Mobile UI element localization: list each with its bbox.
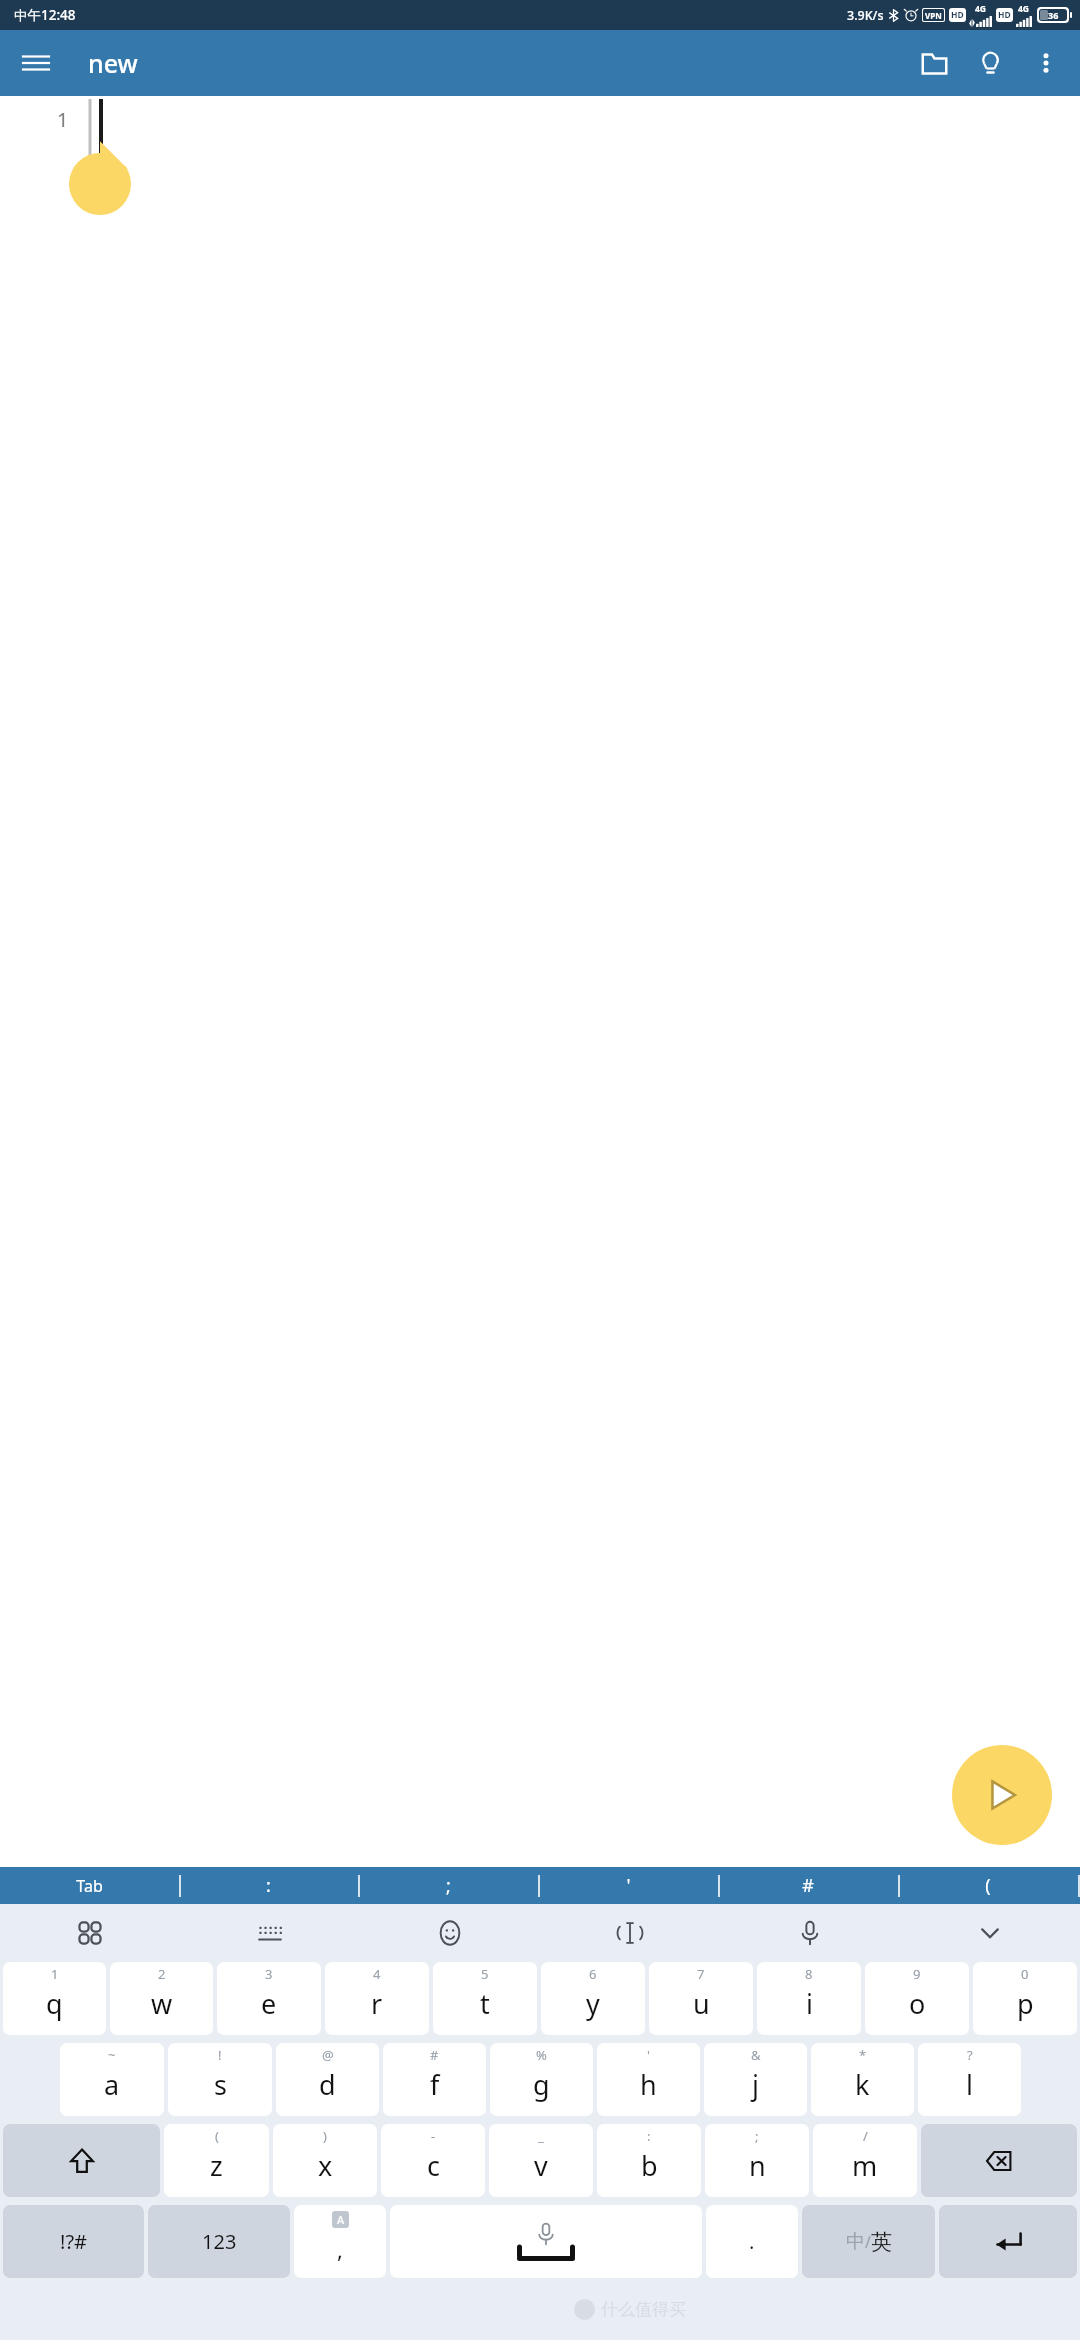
button[interactable]: Symbols	[0, 1904, 180, 1962]
staticText: /	[863, 2127, 868, 2145]
staticText: 1	[57, 106, 69, 133]
button[interactable]: Run	[952, 1745, 1052, 1845]
button[interactable]: &	[704, 2043, 807, 2116]
button[interactable]: *	[811, 2043, 914, 2116]
staticText: #	[430, 2046, 439, 2064]
staticText: ;	[755, 2127, 759, 2145]
button[interactable]: ;	[705, 2124, 809, 2197]
button[interactable]: /	[813, 2124, 917, 2197]
staticText: (	[985, 1873, 991, 1898]
staticText: 9	[913, 1965, 921, 1983]
staticText: q	[46, 1985, 63, 2022]
button[interactable]: 8	[757, 1962, 861, 2035]
button[interactable]: _	[489, 2124, 593, 2197]
button[interactable]: ~	[60, 2043, 164, 2116]
staticText: 英	[871, 2229, 892, 2255]
button[interactable]: Shift	[3, 2124, 160, 2197]
staticText: HD	[951, 9, 964, 21]
staticText: 6	[589, 1965, 597, 1983]
button[interactable]: !	[168, 2043, 272, 2116]
staticText: w	[151, 1985, 173, 2022]
button[interactable]: Enter	[939, 2205, 1077, 2278]
button[interactable]: ?	[918, 2043, 1021, 2116]
button[interactable]: ;	[358, 1867, 538, 1904]
staticText: 123	[202, 2228, 237, 2255]
staticText: _	[538, 2127, 544, 2145]
staticText: Tab	[76, 1875, 103, 1897]
button[interactable]: Open navigation menu	[12, 39, 60, 87]
button[interactable]: More options	[1018, 35, 1074, 91]
staticText: &	[751, 2046, 761, 2064]
button[interactable]: (	[164, 2124, 269, 2197]
staticText: i	[806, 1985, 813, 2022]
staticText: t	[480, 1985, 490, 2022]
button[interactable]: 6	[541, 1962, 645, 2035]
staticText: y	[586, 1985, 600, 2022]
button[interactable]: 7	[649, 1962, 753, 2035]
button[interactable]: Voice input	[720, 1904, 900, 1962]
staticText: l	[966, 2066, 973, 2103]
button[interactable]: 2	[110, 1962, 213, 2035]
staticText: ?	[967, 2046, 973, 2064]
staticText: 中	[846, 2230, 865, 2254]
button[interactable]: .	[706, 2205, 798, 2278]
button[interactable]: Hide keyboard	[900, 1904, 1080, 1962]
staticText: n	[749, 2147, 766, 2184]
button[interactable]: 1	[3, 1962, 106, 2035]
staticText: ,	[337, 2234, 343, 2264]
staticText: j	[752, 2066, 759, 2103]
button[interactable]: Open folder	[906, 35, 962, 91]
staticText: @	[322, 2046, 334, 2064]
staticText: 1	[51, 1965, 59, 1983]
staticText: h	[640, 2066, 657, 2103]
button[interactable]: Space	[390, 2205, 702, 2278]
button[interactable]: Hint	[962, 35, 1018, 91]
staticText: 3	[265, 1965, 273, 1983]
button[interactable]: Backspace	[921, 2124, 1077, 2197]
staticText: 中午12:48	[14, 6, 76, 24]
button[interactable]: '	[597, 2043, 700, 2116]
staticText: f	[430, 2066, 440, 2103]
button[interactable]: 5	[433, 1962, 537, 2035]
button[interactable]: :	[597, 2124, 701, 2197]
button[interactable]: A	[294, 2205, 386, 2278]
button[interactable]: -	[381, 2124, 485, 2197]
staticText: VPN	[925, 10, 942, 21]
staticText: 7	[697, 1965, 705, 1983]
button[interactable]: Switch language	[802, 2205, 935, 2278]
staticText: %	[536, 2046, 547, 2064]
staticText: 4G	[1018, 3, 1030, 15]
button[interactable]: )	[273, 2124, 377, 2197]
button[interactable]: #	[383, 2043, 486, 2116]
staticText: z	[210, 2147, 223, 2184]
staticText: ;	[446, 1873, 451, 1898]
staticText: 36	[1048, 9, 1059, 21]
staticText: v	[534, 2147, 548, 2184]
button[interactable]: @	[276, 2043, 379, 2116]
staticText: m	[852, 2147, 878, 2184]
button[interactable]: 9	[865, 1962, 969, 2035]
button[interactable]: #	[718, 1867, 898, 1904]
button[interactable]: %	[490, 2043, 593, 2116]
button[interactable]: (	[898, 1867, 1078, 1904]
staticText: 什么值得买	[601, 2299, 686, 2320]
button[interactable]: Keyboard layout	[180, 1904, 360, 1962]
staticText: A	[337, 2212, 345, 2227]
button[interactable]: Tab	[0, 1867, 179, 1904]
staticText: !?#	[60, 2228, 87, 2255]
staticText: 5	[481, 1965, 489, 1983]
button[interactable]: 4	[325, 1962, 429, 2035]
button[interactable]: 123	[148, 2205, 290, 2278]
button[interactable]: Emoji	[360, 1904, 540, 1962]
button[interactable]: 0	[973, 1962, 1077, 2035]
button[interactable]: !?#	[3, 2205, 144, 2278]
staticText: 2	[158, 1965, 166, 1983]
staticText: k	[855, 2066, 870, 2103]
staticText: 4	[373, 1965, 381, 1983]
button[interactable]: 3	[217, 1962, 321, 2035]
button[interactable]: :	[179, 1867, 358, 1904]
staticText: o	[909, 1985, 926, 2022]
staticText: '	[626, 1873, 631, 1898]
button[interactable]: '	[538, 1867, 718, 1904]
button[interactable]: Text editing	[540, 1904, 720, 1962]
